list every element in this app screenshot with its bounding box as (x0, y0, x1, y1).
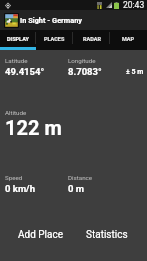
staticText: Speed (5, 174, 23, 181)
staticText: 0 km/h (5, 183, 35, 194)
staticText: Distance (68, 174, 93, 181)
staticText: ± 5 m (126, 68, 144, 76)
staticText: RADAR (83, 36, 101, 42)
staticText: Statistics (86, 229, 128, 241)
other: Data transfer (97, 2, 102, 9)
staticText: 20:43 (123, 0, 145, 10)
staticText: PLACES (44, 36, 65, 42)
staticText: DISPLAY (7, 36, 29, 42)
staticText: Add Place (18, 229, 63, 241)
button[interactable]: In Sight - Germany (0, 10, 147, 30)
staticText: Latitude (5, 57, 28, 64)
button[interactable]: Add Place (7, 217, 73, 253)
button[interactable]: PLACES (36, 30, 73, 50)
staticText: 49.4154° (5, 66, 45, 77)
other: Battery (114, 2, 119, 9)
button[interactable]: DISPLAY (0, 30, 36, 50)
staticText: Longitude (68, 57, 96, 64)
button[interactable]: RADAR (73, 30, 110, 50)
staticText: In Sight - Germany (20, 16, 83, 25)
other: Signal strength (106, 2, 112, 8)
staticText: 122 m (5, 116, 62, 139)
staticText: 0 m (68, 183, 85, 194)
staticText: Altitude (5, 109, 27, 116)
button[interactable]: Statistics (73, 217, 140, 253)
other: GPS status (5, 2, 11, 9)
staticText: 8.7083° (68, 66, 102, 77)
staticText: MAP (122, 36, 135, 42)
button[interactable]: MAP (110, 30, 147, 50)
